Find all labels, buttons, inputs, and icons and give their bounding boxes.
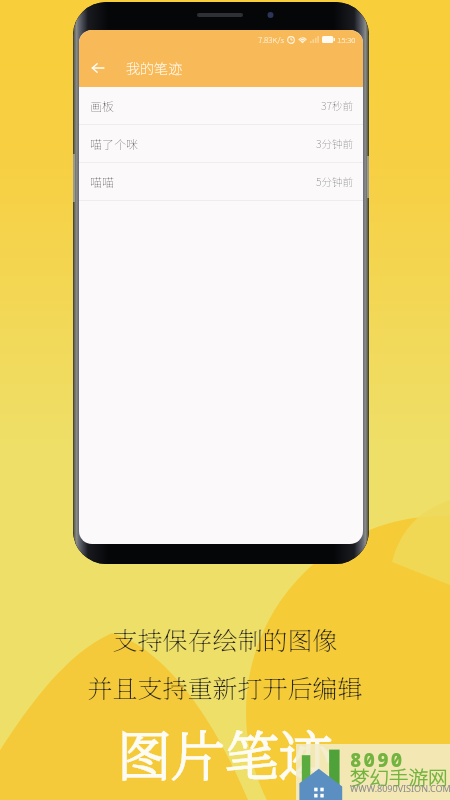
button[interactable]: 8090 梦幻手游网 <box>296 744 450 800</box>
staticText: 7.83K/s <box>258 34 284 46</box>
staticText: 画板 <box>90 97 115 114</box>
staticText: 37秒前 <box>321 98 353 113</box>
staticText: 支持保存绘制的图像 <box>112 621 338 657</box>
button[interactable]: 喵喵 <box>79 163 363 201</box>
staticText: 我的笔迹 <box>126 58 182 78</box>
staticText: 3分钟前 <box>316 136 353 151</box>
staticText: WWW.8090VISION.COM <box>350 782 450 794</box>
staticText: 15:30 <box>337 34 356 46</box>
button[interactable]: 画板 <box>79 87 363 125</box>
staticText: 并且支持重新打开后编辑 <box>87 669 363 705</box>
staticText: 梦幻手游网 <box>350 762 448 790</box>
staticText: 8090 <box>350 747 405 773</box>
staticText: 图片笔迹 <box>117 714 333 792</box>
button[interactable]: 喵了个咪 <box>79 125 363 163</box>
staticText: 喵喵 <box>90 173 115 190</box>
staticText: 5分钟前 <box>316 174 353 189</box>
staticText: 喵了个咪 <box>90 135 139 152</box>
button[interactable]: 返回 <box>85 55 111 81</box>
